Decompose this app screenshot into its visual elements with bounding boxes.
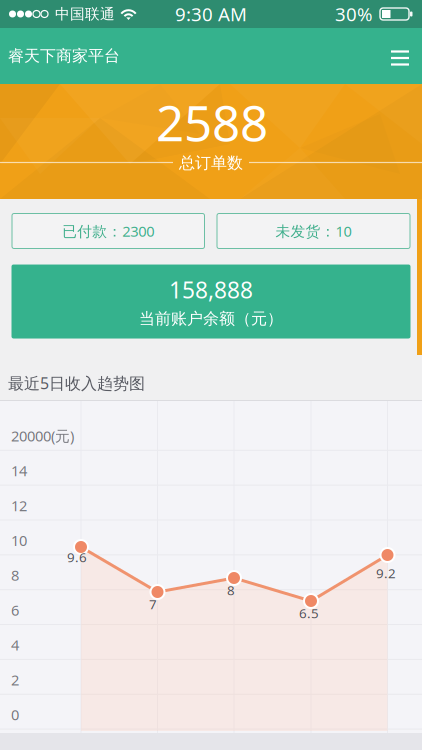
staticText: 未发货：10 bbox=[275, 221, 351, 241]
staticText: 9.2 bbox=[376, 564, 396, 582]
staticText: 8 bbox=[227, 581, 235, 599]
staticText: 7 bbox=[149, 595, 157, 613]
button[interactable]: Menu bbox=[382, 38, 418, 74]
button[interactable]: 158,888 bbox=[11, 264, 410, 338]
staticText: 12 bbox=[11, 496, 27, 515]
staticText: 2588 bbox=[156, 89, 268, 155]
staticText: 8 bbox=[11, 565, 19, 585]
staticText: 6.5 bbox=[299, 604, 319, 622]
staticText: 9:30 AM bbox=[175, 2, 247, 26]
staticText: 中国联通 bbox=[55, 5, 115, 23]
staticText: 总订单数 bbox=[179, 153, 243, 173]
staticText: 9.6 bbox=[67, 548, 87, 566]
staticText: 10 bbox=[11, 530, 27, 550]
button[interactable]: 未发货：10 bbox=[217, 213, 410, 248]
staticText: 158,888 bbox=[169, 275, 253, 305]
staticText: 2 bbox=[11, 670, 19, 689]
staticText: 30% bbox=[335, 2, 373, 26]
staticText: 4 bbox=[11, 635, 19, 655]
button[interactable]: 已付款：2300 bbox=[12, 213, 204, 248]
staticText: 14 bbox=[11, 461, 27, 480]
staticText: 当前账户余额（元） bbox=[139, 309, 283, 328]
staticText: 20000(元) bbox=[11, 426, 74, 445]
staticText: 最近5日收入趋势图 bbox=[8, 372, 145, 394]
staticText: 6 bbox=[11, 600, 19, 620]
staticText: 睿天下商家平台 bbox=[8, 46, 120, 66]
staticText: 已付款：2300 bbox=[62, 221, 154, 241]
staticText: 0 bbox=[11, 705, 19, 724]
